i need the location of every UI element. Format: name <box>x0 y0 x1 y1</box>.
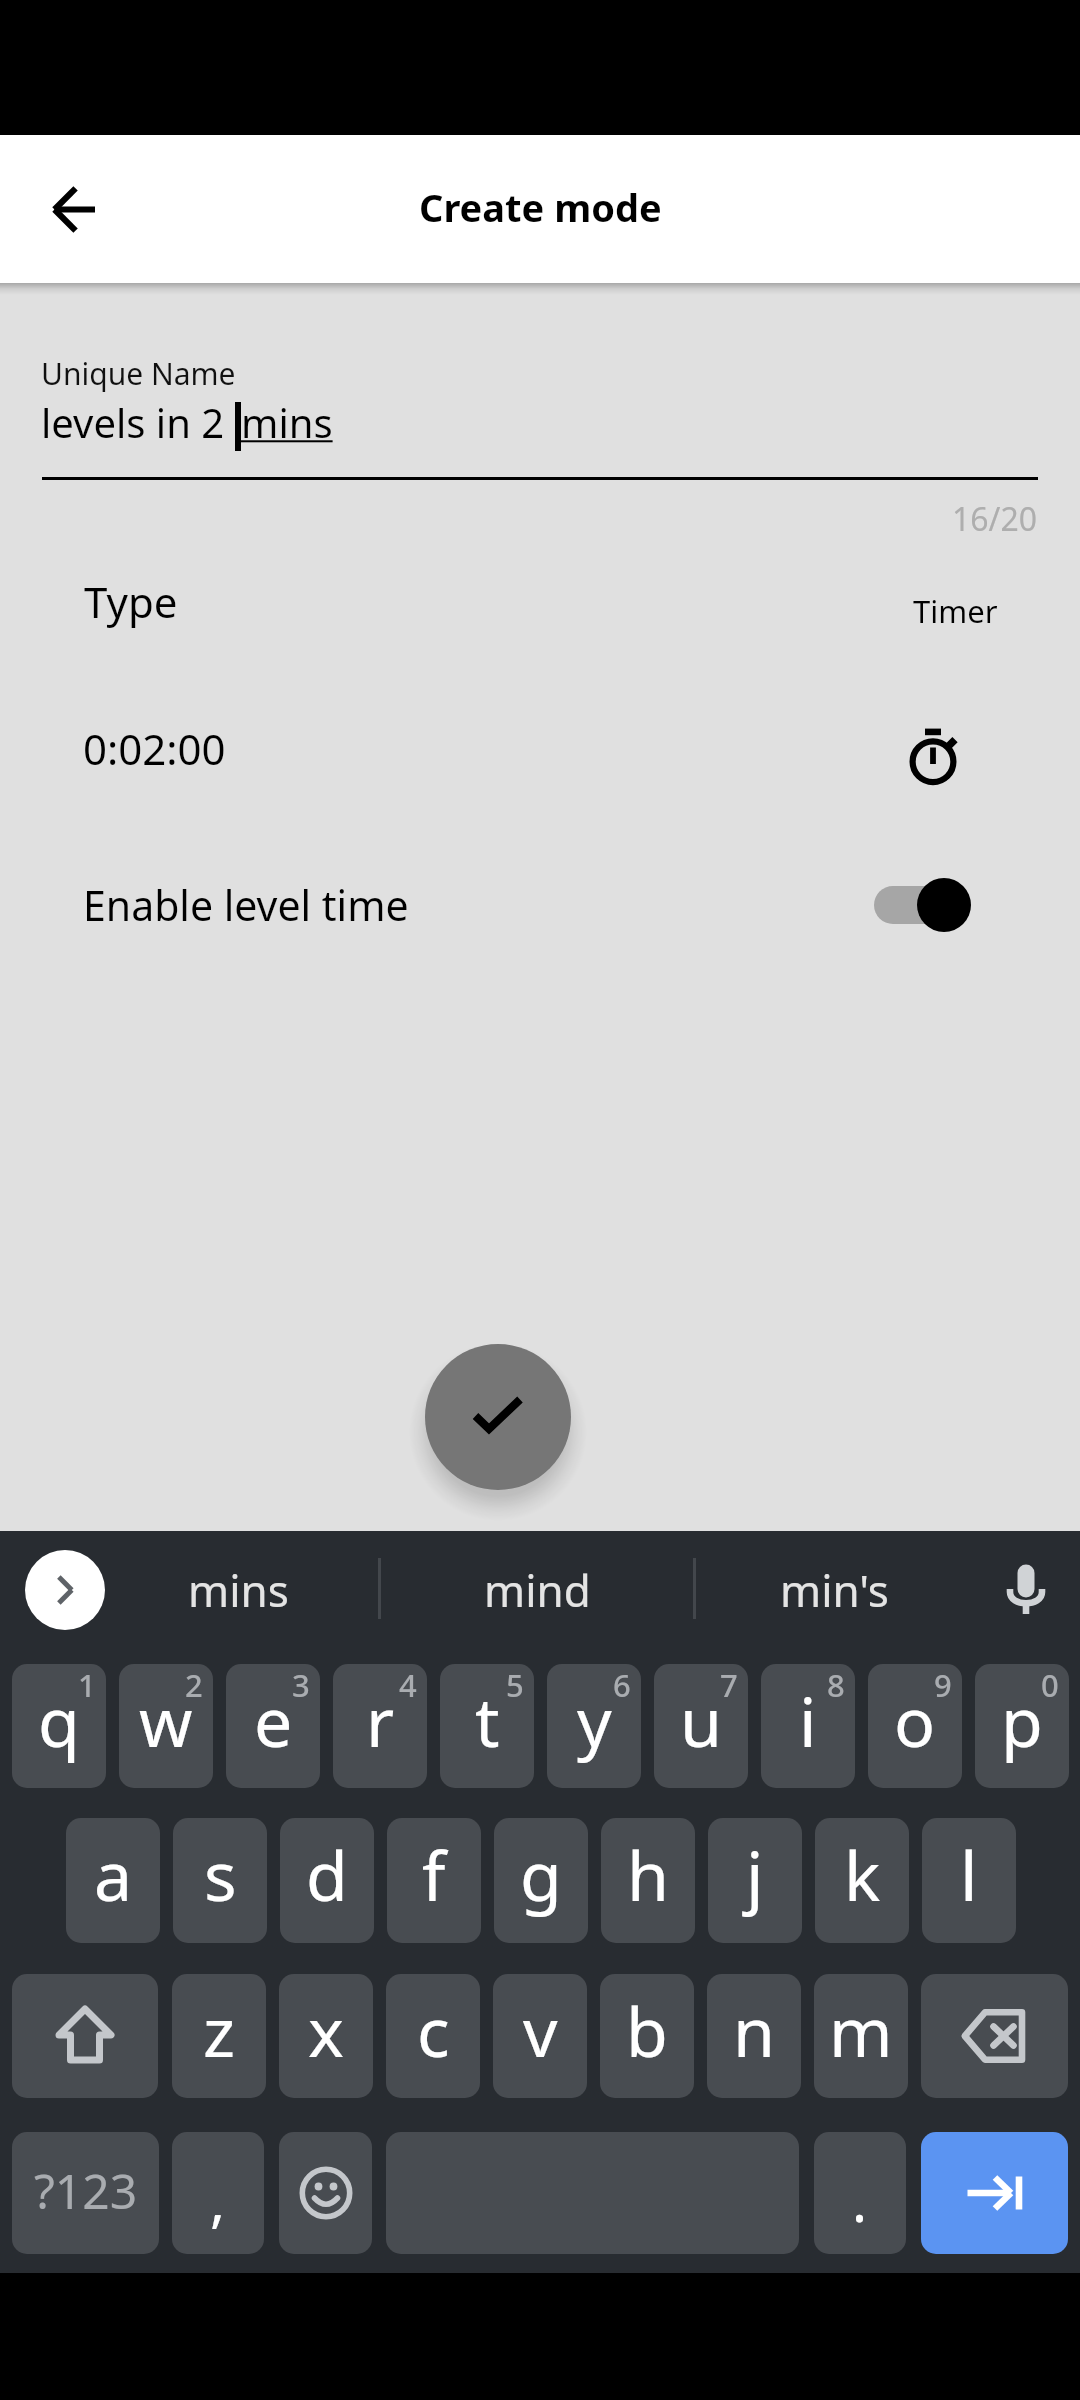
button[interactable]: l <box>922 1818 1016 1943</box>
button[interactable]: m <box>814 1974 908 2098</box>
button[interactable]: , <box>172 2132 264 2254</box>
button[interactable]: 3 <box>226 1664 320 1788</box>
staticText: , <box>210 2162 226 2238</box>
button[interactable]: 0 <box>975 1664 1069 1788</box>
staticText: ?123 <box>34 2158 138 2223</box>
button[interactable]: b <box>600 1974 694 2098</box>
button[interactable]: d <box>280 1818 374 1943</box>
button[interactable]: Enable level time <box>0 861 1080 961</box>
staticText: k <box>844 1828 881 1921</box>
button[interactable]: Back <box>29 165 117 253</box>
staticText: 0:02:00 <box>83 720 226 777</box>
button[interactable]: c <box>386 1974 480 2098</box>
button[interactable]: mind <box>427 1531 647 1648</box>
staticText: e <box>254 1674 293 1767</box>
staticText: 16/20 <box>952 497 1038 541</box>
staticText: mins <box>188 1560 289 1620</box>
button[interactable]: j <box>708 1818 802 1943</box>
staticText: 0 <box>1041 1664 1059 1706</box>
staticText: mins <box>241 395 333 449</box>
button[interactable]: . <box>814 2132 906 2254</box>
staticText: x <box>308 1984 344 2077</box>
staticText: g <box>520 1828 562 1921</box>
button[interactable]: 0:02:00 <box>0 701 1080 801</box>
button[interactable]: a <box>66 1818 160 1943</box>
staticText: y <box>577 1674 612 1767</box>
button[interactable]: ?123 <box>12 2132 159 2254</box>
staticText: Enable level time <box>83 877 409 933</box>
staticText: o <box>894 1674 936 1767</box>
staticText: n <box>733 1984 776 2077</box>
button[interactable]: min's <box>724 1531 944 1648</box>
button[interactable]: h <box>601 1818 695 1943</box>
staticText: Create mode <box>419 181 662 233</box>
button[interactable]: Shift <box>12 1974 158 2098</box>
button[interactable]: 5 <box>440 1664 534 1788</box>
staticText: levels in 2 <box>41 395 235 449</box>
staticText: . <box>852 2162 868 2238</box>
button[interactable]: 4 <box>333 1664 427 1788</box>
staticText: 4 <box>399 1664 417 1706</box>
staticText: 9 <box>934 1664 952 1706</box>
button[interactable]: v <box>493 1974 587 2098</box>
staticText: l <box>960 1828 978 1921</box>
button[interactable]: f <box>387 1818 481 1943</box>
staticText: a <box>94 1828 133 1921</box>
staticText: p <box>1001 1674 1043 1767</box>
staticText: 3 <box>292 1664 310 1706</box>
staticText: Timer <box>913 590 998 632</box>
button[interactable]: 1 <box>12 1664 106 1788</box>
button[interactable]: 8 <box>761 1664 855 1788</box>
button[interactable]: Save <box>425 1344 571 1490</box>
staticText: b <box>626 1984 668 2077</box>
button[interactable]: mins <box>128 1531 348 1648</box>
button[interactable]: 6 <box>547 1664 641 1788</box>
button[interactable]: Enter <box>921 2132 1068 2254</box>
staticText: v <box>523 1984 558 2077</box>
staticText: s <box>204 1828 237 1921</box>
button[interactable]: x <box>279 1974 373 2098</box>
staticText: w <box>139 1674 193 1767</box>
staticText: i <box>799 1674 817 1767</box>
staticText: 5 <box>506 1664 524 1706</box>
staticText: t <box>475 1674 500 1767</box>
staticText: j <box>746 1828 764 1921</box>
staticText: 1 <box>78 1664 96 1706</box>
button[interactable]: s <box>173 1818 267 1943</box>
staticText: d <box>306 1828 348 1921</box>
staticText: 8 <box>827 1664 845 1706</box>
button[interactable]: z <box>172 1974 266 2098</box>
staticText: z <box>203 1984 235 2077</box>
button[interactable]: Backspace <box>921 1974 1068 2098</box>
staticText: f <box>422 1828 446 1921</box>
button[interactable]: Voice input <box>986 1550 1066 1630</box>
staticText: h <box>627 1828 670 1921</box>
button[interactable]: More suggestions <box>25 1550 105 1630</box>
staticText: 2 <box>185 1664 203 1706</box>
staticText: c <box>417 1984 450 2077</box>
button[interactable]: n <box>707 1974 801 2098</box>
staticText: u <box>680 1674 723 1767</box>
staticText: q <box>38 1674 80 1767</box>
button[interactable]: Type <box>0 555 1080 647</box>
button[interactable]: Emoji <box>279 2132 372 2254</box>
button[interactable]: 9 <box>868 1664 962 1788</box>
staticText: 7 <box>720 1664 738 1706</box>
staticText: Type <box>84 573 178 630</box>
staticText: 6 <box>613 1664 631 1706</box>
staticText: min's <box>780 1560 889 1620</box>
button[interactable]: g <box>494 1818 588 1943</box>
button[interactable]: k <box>815 1818 909 1943</box>
button[interactable]: 2 <box>119 1664 213 1788</box>
staticText: mind <box>484 1560 591 1620</box>
button[interactable]: 7 <box>654 1664 748 1788</box>
staticText: m <box>829 1984 893 2077</box>
staticText: r <box>366 1674 395 1767</box>
staticText: Unique Name <box>41 353 236 394</box>
